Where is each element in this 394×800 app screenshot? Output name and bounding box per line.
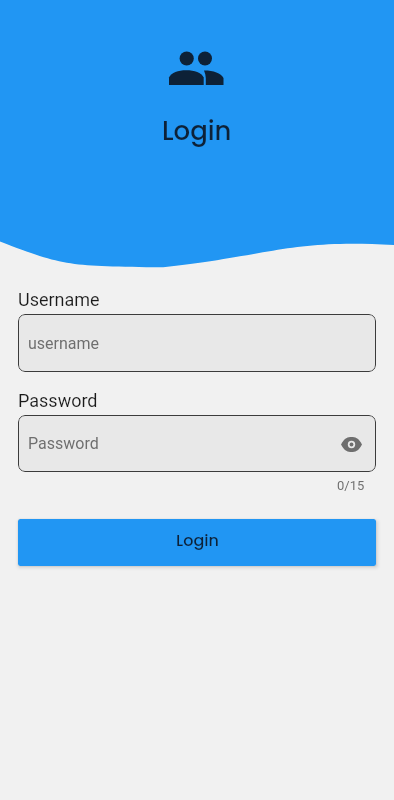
staticText: 0/15 — [337, 478, 365, 493]
staticText: Password — [28, 434, 99, 453]
button[interactable]: Password — [18, 415, 376, 472]
button[interactable]: Show password — [337, 430, 365, 458]
staticText: username — [28, 334, 100, 353]
staticText: Login — [162, 113, 232, 149]
staticText: Login — [176, 529, 219, 551]
staticText: Password — [18, 390, 98, 411]
staticText: Username — [18, 289, 100, 310]
button[interactable]: Login — [18, 519, 376, 566]
button[interactable]: username — [18, 314, 376, 372]
